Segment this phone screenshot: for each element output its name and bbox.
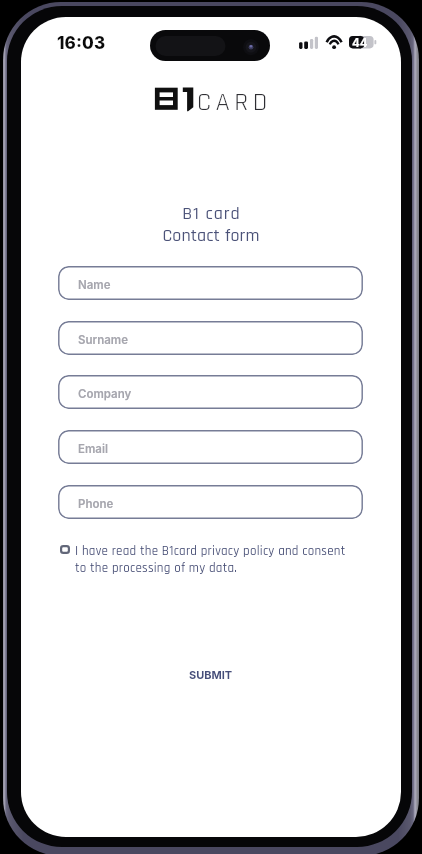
staticText: Phone (78, 497, 114, 511)
staticText: Name (78, 278, 111, 292)
button[interactable]: Company (58, 375, 363, 409)
staticText: SUBMIT (189, 668, 233, 681)
staticText: Surname (78, 333, 128, 347)
button[interactable]: Name (58, 266, 363, 300)
staticText: I have read the B1card privacy policy an… (75, 543, 346, 577)
button[interactable]: Phone (58, 485, 363, 519)
staticText: Email (78, 442, 108, 456)
button[interactable]: Accept privacy policy (59, 542, 346, 577)
staticText: CARD (197, 86, 272, 114)
staticText: Company (78, 387, 132, 401)
staticText: Contact form (162, 224, 260, 247)
staticText: 44 (352, 36, 368, 50)
staticText: B1 card (182, 202, 241, 225)
button[interactable]: Email (58, 430, 363, 464)
button[interactable]: Surname (58, 321, 363, 355)
other: Accept privacy policy (60, 545, 70, 554)
button[interactable]: SUBMIT (179, 664, 243, 685)
staticText: 16:03 (57, 33, 106, 54)
other: Signal, Wi-Fi and battery status (297, 34, 379, 51)
